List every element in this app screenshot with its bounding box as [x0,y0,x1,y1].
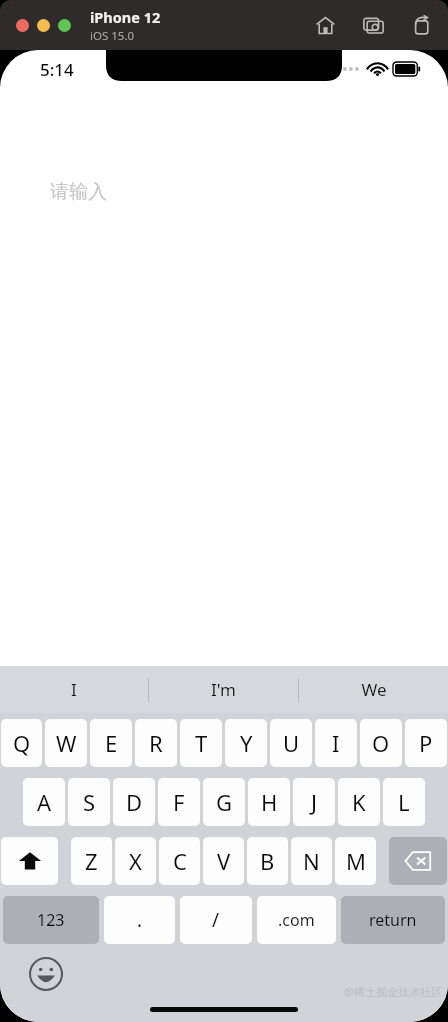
staticText: I [332,728,340,758]
button[interactable]: Minimize [37,19,50,32]
button[interactable]: M [335,837,376,885]
button[interactable]: I'm [149,666,298,713]
button[interactable]: L [383,778,425,826]
button[interactable]: We [299,666,448,713]
button[interactable]: X [115,837,156,885]
staticText: P [419,728,433,758]
button[interactable]: E [90,719,132,767]
staticText: D [126,787,143,817]
staticText: @稀土掘金技术社区 [344,984,442,999]
button[interactable]: P [405,719,447,767]
button[interactable]: W [45,719,87,767]
staticText: S [83,787,96,817]
button[interactable]: Q [1,719,42,767]
staticText: R [149,728,163,758]
staticText: / [212,907,220,933]
button[interactable]: Emoji [26,954,66,994]
button[interactable]: / [180,896,252,944]
staticText: V [217,846,231,876]
button[interactable]: D [113,778,155,826]
button[interactable]: C [159,837,200,885]
button[interactable]: F [158,778,200,826]
button[interactable]: 请输入 [50,180,107,204]
staticText: K [352,787,366,817]
button[interactable]: H [248,778,290,826]
button[interactable]: Z [71,837,112,885]
button[interactable]: . [104,896,175,944]
staticText: 123 [37,909,65,931]
staticText: B [260,846,275,876]
button[interactable]: Close [16,19,29,32]
staticText: . [137,907,143,933]
staticText: U [283,728,300,758]
staticText: X [129,846,142,876]
staticText: M [346,846,366,876]
staticText: C [173,846,187,876]
staticText: .com [278,909,315,931]
button[interactable]: V [203,837,244,885]
staticText: Z [85,846,98,876]
button[interactable]: Backspace [389,837,447,885]
button[interactable]: return [341,896,445,944]
button[interactable]: B [247,837,288,885]
button[interactable]: Screenshot [360,12,386,38]
staticText: O [372,728,390,758]
button[interactable]: A [23,778,65,826]
staticText: G [216,787,233,817]
button[interactable]: J [293,778,335,826]
staticText: H [261,787,278,817]
staticText: Y [240,728,253,758]
button[interactable]: Shift [1,837,58,885]
staticText: N [303,846,320,876]
button[interactable]: I [0,666,148,713]
staticText: L [398,787,410,817]
staticText: T [195,728,208,758]
staticText: Q [13,728,31,758]
button[interactable]: U [270,719,312,767]
button[interactable]: N [291,837,332,885]
button[interactable]: Maximize [58,19,71,32]
button[interactable]: K [338,778,380,826]
staticText: E [105,728,118,758]
staticText: iOS 15.0 [90,28,135,44]
button[interactable]: Y [225,719,267,767]
button[interactable]: .com [257,896,336,944]
staticText: A [37,787,52,817]
staticText: W [56,728,77,758]
staticText: return [369,909,417,931]
button[interactable]: I [315,719,357,767]
staticText: J [311,787,318,817]
staticText: F [173,787,185,817]
staticText: 5:14 [40,58,74,81]
button[interactable]: O [360,719,402,767]
button[interactable]: Home [312,12,338,38]
button[interactable]: S [68,778,110,826]
button[interactable]: G [203,778,245,826]
staticText: I'm [211,678,236,701]
button[interactable]: T [180,719,222,767]
staticText: I [71,678,77,701]
button[interactable]: R [135,719,177,767]
button[interactable]: Rotate [408,12,434,38]
staticText: iPhone 12 [90,7,161,27]
button[interactable]: 123 [3,896,99,944]
staticText: We [361,678,387,701]
